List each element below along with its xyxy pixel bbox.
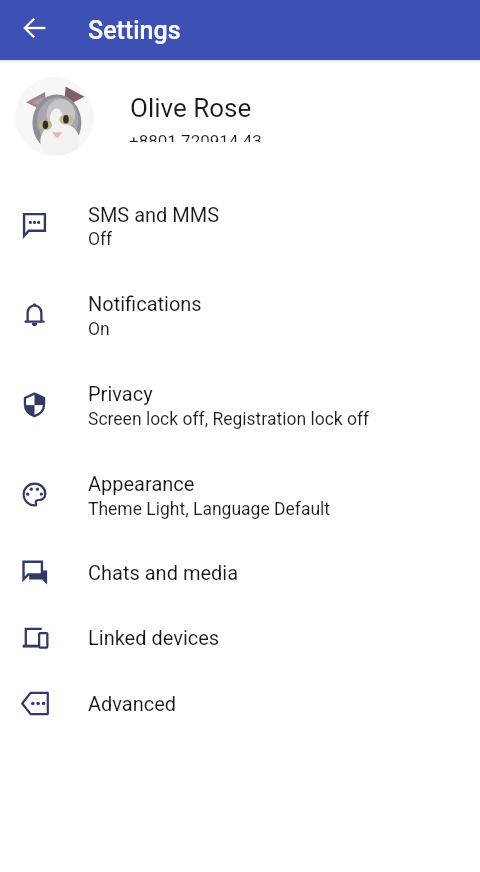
staticText: Theme Light, Language Default xyxy=(88,499,331,520)
staticText: SMS and MMS xyxy=(88,203,220,226)
staticText: On xyxy=(88,319,110,340)
staticText: Advanced xyxy=(88,692,177,715)
staticText: Olive Rose xyxy=(130,93,252,123)
staticText: Privacy xyxy=(88,382,153,405)
button[interactable]: Navigate up xyxy=(12,5,58,51)
staticText: Linked devices xyxy=(88,626,220,649)
staticText: Notifications xyxy=(88,292,202,315)
button[interactable]: Privacy xyxy=(0,360,480,450)
button[interactable]: Appearance xyxy=(0,449,480,540)
staticText: Settings xyxy=(88,16,181,45)
staticText: Screen lock off, Registration lock off xyxy=(88,409,370,430)
staticText: Off xyxy=(88,229,113,250)
staticText: Chats and media xyxy=(88,561,239,584)
staticText: Appearance xyxy=(88,472,195,495)
button[interactable]: Notifications xyxy=(0,270,480,360)
button[interactable]: SMS and MMS xyxy=(0,180,480,270)
button[interactable]: Chats and media xyxy=(0,540,480,605)
button[interactable]: Linked devices xyxy=(0,605,480,671)
staticText: +8801 720914 43 xyxy=(129,132,262,142)
button[interactable]: Advanced xyxy=(0,671,480,736)
button[interactable]: Olive Rose xyxy=(0,60,480,180)
